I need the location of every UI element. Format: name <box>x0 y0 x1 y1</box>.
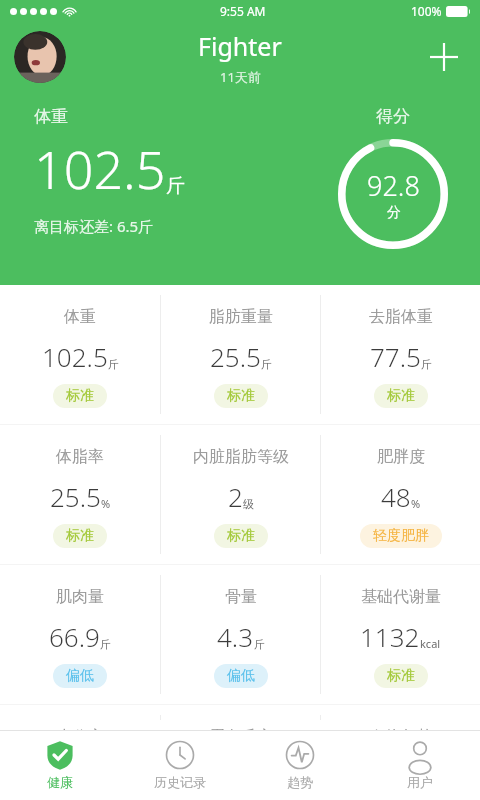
staticText: 标准 <box>387 387 415 405</box>
button[interactable]: Add measurement <box>422 35 466 79</box>
staticText: 48 <box>381 479 411 514</box>
button[interactable]: 肥胖度 <box>321 425 480 564</box>
button[interactable]: 内脏脂肪等级 <box>161 425 320 564</box>
staticText: 历史记录 <box>154 774 206 790</box>
staticText: 25.5 <box>210 339 261 374</box>
staticText: 得分 <box>376 106 410 127</box>
button[interactable]: 用户 <box>360 731 480 800</box>
button[interactable]: 体脂率 <box>0 425 160 564</box>
staticText: 基础代谢量 <box>361 587 441 607</box>
staticText: 斤 <box>421 357 432 371</box>
staticText: kcal <box>420 636 441 651</box>
staticText: 体重 <box>34 106 68 127</box>
staticText: 77.5 <box>370 339 421 374</box>
button[interactable]: 体重 <box>0 285 160 424</box>
staticText: 标准 <box>387 667 415 685</box>
button[interactable]: 去脂体重 <box>321 285 480 424</box>
staticText: 2 <box>228 479 243 514</box>
staticText: 健康 <box>47 774 73 790</box>
staticText: % <box>411 496 421 511</box>
button[interactable]: 骨量 <box>161 565 320 704</box>
button[interactable]: 基础代谢量 <box>321 565 480 704</box>
staticText: 轻度肥胖 <box>373 527 429 545</box>
staticText: 11天前 <box>220 68 261 86</box>
button[interactable]: 趋势 <box>240 731 360 800</box>
staticText: 骨量 <box>225 587 257 607</box>
button[interactable]: 身体年龄 <box>321 705 480 730</box>
button[interactable]: Profile avatar <box>14 31 66 83</box>
staticText: 4.3 <box>217 619 254 654</box>
staticText: % <box>101 496 111 511</box>
staticText: 斤 <box>261 357 272 371</box>
staticText: 25.5 <box>50 479 101 514</box>
staticText: 离目标还差: 6.5斤 <box>34 216 154 236</box>
button[interactable]: 健康 <box>0 731 120 800</box>
button[interactable]: 脂肪重量 <box>161 285 320 424</box>
staticText: 趋势 <box>287 774 313 790</box>
button[interactable]: 肌肉量 <box>0 565 160 704</box>
staticText: 偏低 <box>227 667 255 685</box>
staticText: 102.5 <box>34 133 166 204</box>
staticText: 斤 <box>108 357 119 371</box>
staticText: 身体年龄 <box>369 727 433 730</box>
staticText: 蛋白质率 <box>209 727 273 730</box>
button[interactable]: Score 92.8 <box>338 139 448 249</box>
button[interactable]: 蛋白质率 <box>161 705 320 730</box>
staticText: 标准 <box>66 387 94 405</box>
staticText: 水分率 <box>56 727 104 730</box>
staticText: 标准 <box>227 387 255 405</box>
staticText: 体重 <box>64 307 96 327</box>
staticText: 66.9 <box>49 619 100 654</box>
staticText: 去脂体重 <box>369 307 433 327</box>
staticText: 分 <box>387 204 401 222</box>
staticText: 102.5 <box>42 339 108 374</box>
staticText: 斤 <box>254 637 265 651</box>
staticText: 级 <box>243 497 254 511</box>
staticText: 肥胖度 <box>377 447 425 467</box>
staticText: 肌肉量 <box>56 587 104 607</box>
staticText: 脂肪重量 <box>209 307 273 327</box>
staticText: 斤 <box>166 174 185 198</box>
staticText: Fighter <box>198 29 282 63</box>
staticText: 92.8 <box>367 167 420 204</box>
staticText: 用户 <box>407 774 433 790</box>
staticText: 标准 <box>227 527 255 545</box>
staticText: 9:55 AM <box>220 3 266 19</box>
staticText: 标准 <box>66 527 94 545</box>
staticText: 体脂率 <box>56 447 104 467</box>
staticText: 斤 <box>100 637 111 651</box>
staticText: 内脏脂肪等级 <box>193 447 289 467</box>
staticText: 100% <box>411 3 442 19</box>
button[interactable]: 历史记录 <box>120 731 240 800</box>
staticText: 偏低 <box>66 667 94 685</box>
staticText: 1132 <box>360 619 420 654</box>
